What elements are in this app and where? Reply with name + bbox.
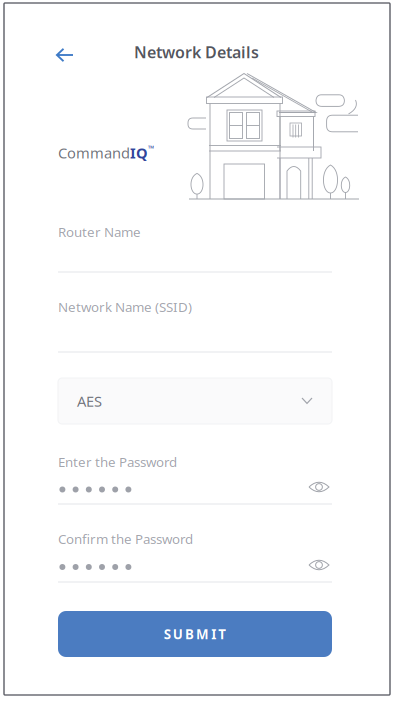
staticText: ™: [148, 143, 154, 154]
staticText: Enter the Password: [58, 453, 177, 471]
staticText: Router Name: [58, 223, 141, 241]
staticText: Command: [58, 143, 130, 162]
staticText: Network Name (SSID): [58, 298, 192, 316]
staticText: AES: [77, 391, 102, 411]
button[interactable]: SUBMIT: [58, 611, 332, 657]
button[interactable]: Show password: [308, 480, 330, 494]
button[interactable]: Back: [46, 40, 84, 70]
staticText: Confirm the Password: [58, 530, 193, 548]
staticText: IQ: [130, 143, 148, 162]
staticText: Network Details: [134, 41, 259, 63]
button[interactable]: AES: [58, 378, 332, 424]
button[interactable]: Show confirmation password: [308, 558, 330, 572]
staticText: SUBMIT: [164, 625, 226, 643]
